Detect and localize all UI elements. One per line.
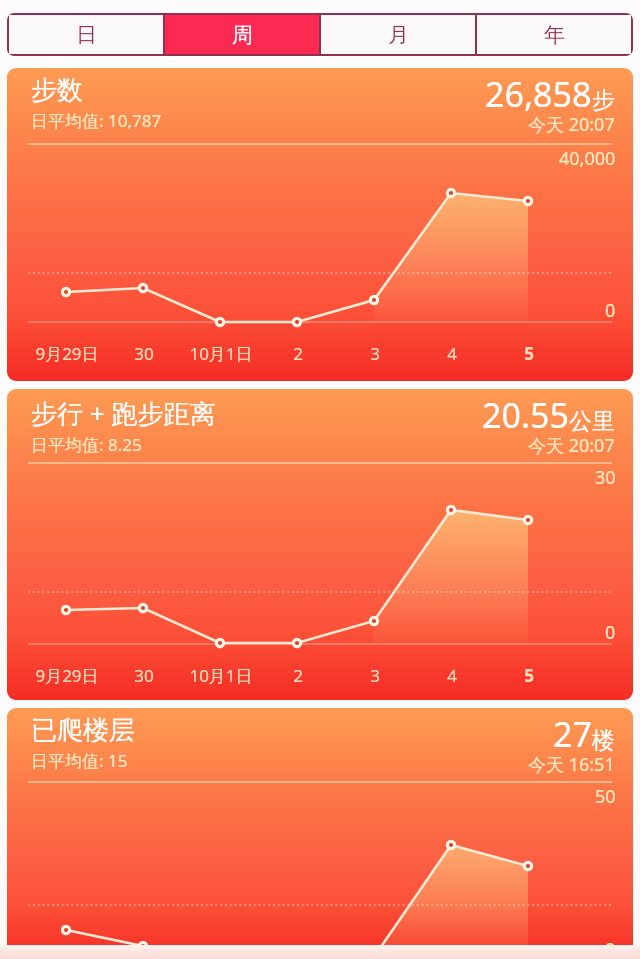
staticText: 0 <box>605 298 616 323</box>
staticText: 30 <box>595 465 616 490</box>
staticText: 27 <box>553 711 592 757</box>
staticText: 今天 16:51 <box>528 752 615 777</box>
staticText: 步 <box>592 86 615 115</box>
staticText: 步数 <box>31 74 83 107</box>
staticText: 2 <box>293 664 303 687</box>
staticText: 周 <box>232 22 253 48</box>
button[interactable]: 已爬楼层 <box>7 708 633 959</box>
staticText: 20.55 <box>482 392 569 438</box>
button[interactable]: 年 <box>477 15 631 54</box>
button[interactable]: 日 <box>9 15 163 54</box>
staticText: 3 <box>370 664 380 687</box>
staticText: 今天 20:07 <box>528 433 615 458</box>
staticText: 0 <box>605 937 616 959</box>
staticText: 5 <box>524 664 534 687</box>
staticText: 已爬楼层 <box>31 714 135 747</box>
staticText: 3 <box>370 342 380 365</box>
staticText: 40,000 <box>559 146 616 171</box>
staticText: 50 <box>595 784 616 809</box>
staticText: 9月29日 <box>35 664 99 687</box>
staticText: 30 <box>134 342 154 365</box>
staticText: 10月1日 <box>189 664 253 687</box>
staticText: 今天 20:07 <box>528 112 615 137</box>
button[interactable]: 步数 <box>7 68 633 381</box>
staticText: 5 <box>524 342 534 365</box>
staticText: 日平均值: 15 <box>31 749 128 772</box>
staticText: 公里 <box>569 407 615 436</box>
button[interactable]: 周 <box>165 15 319 54</box>
staticText: 日平均值: 10,787 <box>31 109 162 132</box>
staticText: 年 <box>544 22 565 48</box>
staticText: 日 <box>76 22 97 48</box>
staticText: 4 <box>447 664 457 687</box>
button[interactable]: 月 <box>321 15 475 54</box>
staticText: 月 <box>388 22 409 48</box>
staticText: 楼 <box>592 726 615 755</box>
staticText: 10月1日 <box>189 342 253 365</box>
staticText: 26,858 <box>485 71 592 117</box>
staticText: 2 <box>293 342 303 365</box>
staticText: 日平均值: 8.25 <box>31 433 142 456</box>
staticText: 9月29日 <box>35 342 99 365</box>
staticText: 4 <box>447 342 457 365</box>
button[interactable]: 步行 + 跑步距离 <box>7 389 633 700</box>
staticText: 30 <box>134 664 154 687</box>
staticText: 步行 + 跑步距离 <box>31 395 216 431</box>
staticText: 0 <box>605 620 616 645</box>
